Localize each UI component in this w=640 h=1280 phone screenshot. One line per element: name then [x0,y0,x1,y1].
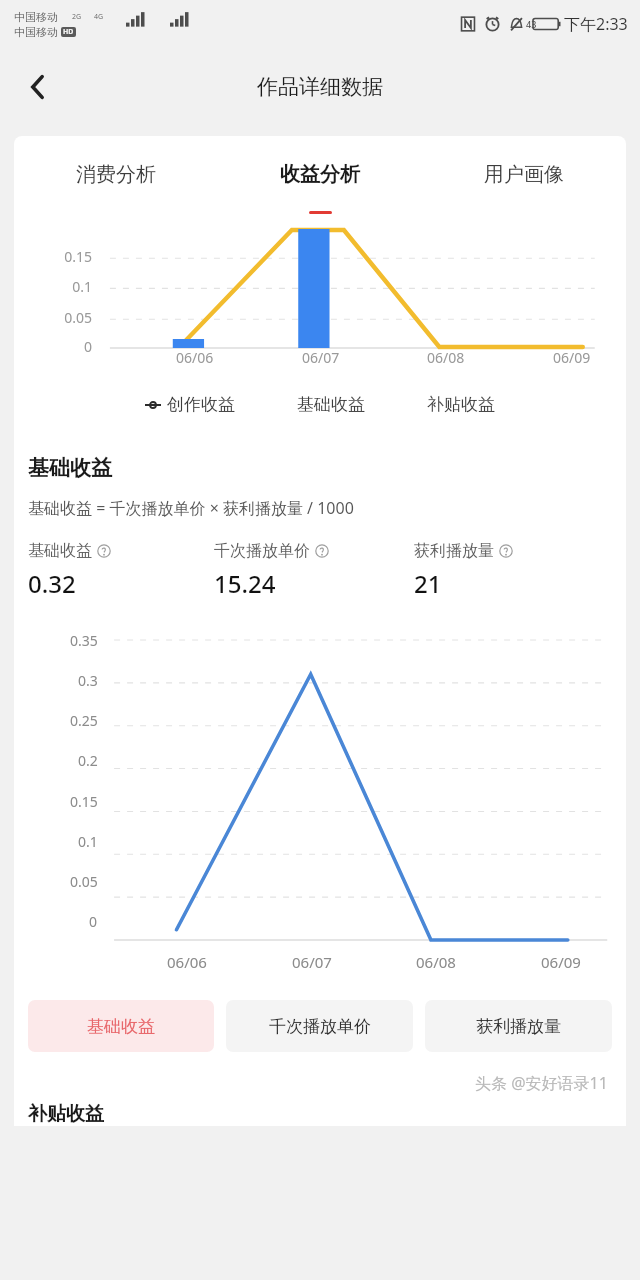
staticText: 千次播放单价 [214,541,310,561]
staticText: 15.24 [214,567,276,600]
staticText: 0.1 [78,832,98,851]
staticText: 获利播放量 [476,1016,561,1037]
staticText: 基础收益 = 千次播放单价 × 获利播放量 / 1000 [28,497,354,519]
staticText: 0.05 [28,308,92,327]
staticText: 0.25 [70,711,98,730]
staticText: 0.3 [78,671,98,690]
staticText: 作品详细数据 [257,74,383,100]
staticText: 0.05 [70,872,98,891]
staticText: 基础收益 [297,394,365,415]
staticText: 2G [72,12,82,22]
staticText: 获利播放量 [414,541,494,561]
staticText: 06/09 [541,952,581,972]
staticText: 补贴收益 [28,1102,104,1126]
staticText: 06/07 [292,952,332,972]
staticText: 补贴收益 [427,394,495,415]
staticText: 06/06 [167,952,207,972]
button[interactable]: 消费分析 [14,150,218,223]
staticText: 基础收益 [28,455,112,481]
staticText: 基础收益 [28,541,92,561]
button[interactable]: 创作收益 [141,394,239,415]
staticText: 0.15 [28,247,92,266]
staticText: 21 [414,567,442,600]
button[interactable]: 补贴收益 [423,394,499,415]
staticText: 0.15 [70,792,98,811]
staticText: 0.32 [28,567,76,600]
staticText: 基础收益 [87,1016,155,1037]
staticText: 创作收益 [167,394,235,415]
staticText: 千次播放单价 [269,1016,371,1037]
staticText: 用户画像 [484,162,564,187]
staticText: 43 [526,18,537,30]
button[interactable]: 基础收益 [28,541,214,600]
staticText: 中国移动 [14,10,58,24]
staticText: 4G [94,12,104,22]
staticText: 06/08 [427,348,465,367]
staticText: 0.35 [70,631,98,650]
staticText: 0 [89,912,98,931]
button[interactable]: 用户画像 [422,150,626,223]
staticText: 消费分析 [76,162,156,187]
button[interactable]: 获利播放量 [414,541,584,600]
staticText: 下午2:33 [564,13,628,35]
staticText: 收益分析 [280,162,360,187]
staticText: 中国移动 [14,25,58,39]
staticText: 06/06 [176,348,214,367]
button[interactable]: 基础收益 [293,394,369,415]
staticText: 06/09 [553,348,591,367]
staticText: 头条 @安好语录11 [475,1072,608,1094]
button[interactable]: 千次播放单价 [214,541,414,600]
button[interactable]: 收益分析 [218,150,422,226]
button[interactable]: 返回 [12,61,64,113]
staticText: 0 [28,337,92,356]
staticText: 06/08 [416,952,456,972]
button[interactable]: 千次播放单价 [226,1000,413,1052]
staticText: HD [63,27,74,37]
staticText: 0.2 [78,751,98,770]
button[interactable]: 获利播放量 [425,1000,612,1052]
button[interactable]: 基础收益 [28,1000,214,1052]
staticText: 0.1 [28,277,92,296]
staticText: 06/07 [302,348,340,367]
